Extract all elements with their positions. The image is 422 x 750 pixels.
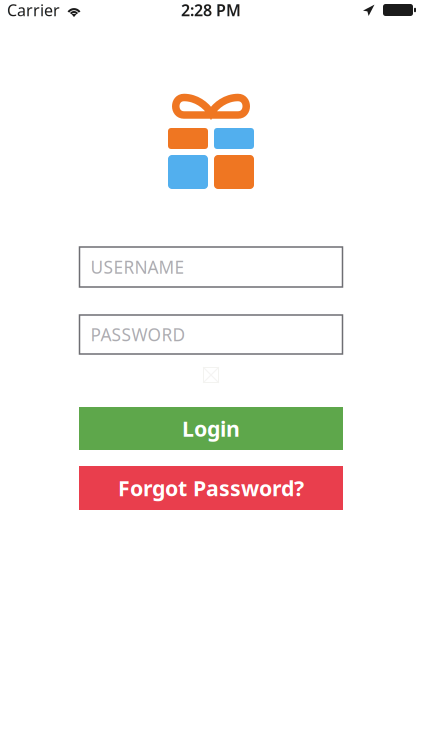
staticText: 2:28 PM bbox=[181, 0, 241, 21]
image bbox=[203, 367, 219, 383]
button[interactable]: Forgot Password? bbox=[79, 466, 343, 510]
button[interactable]: Login bbox=[79, 407, 343, 450]
button[interactable]: PASSWORD bbox=[79, 315, 342, 354]
staticText: Forgot Password? bbox=[118, 474, 304, 502]
staticText: Carrier bbox=[7, 0, 60, 21]
staticText: USERNAME bbox=[90, 255, 184, 278]
staticText: Login bbox=[182, 414, 240, 443]
button[interactable]: USERNAME bbox=[79, 247, 342, 287]
staticText: PASSWORD bbox=[90, 323, 185, 346]
